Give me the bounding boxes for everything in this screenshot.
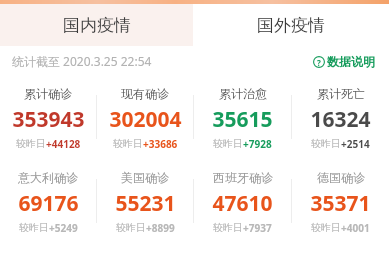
staticText: 较昨日 (113, 137, 143, 148)
staticText: +33686 (143, 137, 178, 148)
button[interactable]: 现有确诊 (97, 86, 193, 148)
staticText: 较昨日 (19, 221, 49, 232)
staticText: 国外疫情 (257, 15, 325, 36)
staticText: +8899 (146, 221, 175, 232)
staticText: ? (317, 57, 321, 68)
staticText: 累计治愈 (219, 86, 267, 101)
staticText: 累计确诊 (24, 86, 72, 101)
staticText: +2514 (341, 137, 370, 148)
staticText: 美国确诊 (121, 170, 169, 185)
button[interactable]: 德国确诊 (292, 170, 389, 232)
staticText: +4001 (341, 221, 370, 232)
button[interactable]: 累计治愈 (194, 86, 291, 148)
staticText: 47610 (212, 189, 273, 218)
staticText: 302004 (109, 105, 182, 134)
button[interactable]: 国内疫情 (0, 4, 193, 46)
staticText: 德国确诊 (317, 170, 365, 185)
staticText: 西班牙确诊 (213, 170, 273, 185)
staticText: 16324 (310, 105, 371, 134)
staticText: +7937 (243, 221, 272, 232)
staticText: 数据说明 (327, 54, 375, 69)
staticText: +5249 (49, 221, 78, 232)
staticText: 意大利确诊 (18, 170, 78, 185)
staticText: 统计截至 2020.3.25 22:54 (12, 53, 152, 69)
button[interactable]: 累计确诊 (0, 86, 96, 148)
button[interactable]: 意大利确诊 (0, 170, 96, 232)
staticText: +44128 (46, 137, 81, 148)
staticText: 较昨日 (311, 137, 341, 148)
staticText: 353943 (12, 105, 85, 134)
staticText: 国内疫情 (63, 15, 131, 36)
button[interactable]: 累计死亡 (292, 86, 389, 148)
button[interactable]: 西班牙确诊 (194, 170, 291, 232)
staticText: 69176 (18, 189, 79, 218)
staticText: 较昨日 (116, 221, 146, 232)
staticText: 累计死亡 (317, 86, 365, 101)
button[interactable]: 美国确诊 (97, 170, 193, 232)
staticText: 较昨日 (213, 221, 243, 232)
staticText: 35371 (310, 189, 371, 218)
staticText: 较昨日 (311, 221, 341, 232)
staticText: 35615 (212, 105, 273, 134)
button[interactable]: ? (311, 52, 377, 71)
button[interactable]: 国外疫情 (193, 4, 389, 46)
staticText: 55231 (115, 189, 176, 218)
staticText: 较昨日 (213, 137, 243, 148)
staticText: 现有确诊 (121, 86, 169, 101)
staticText: 较昨日 (16, 137, 46, 148)
staticText: +7928 (243, 137, 272, 148)
